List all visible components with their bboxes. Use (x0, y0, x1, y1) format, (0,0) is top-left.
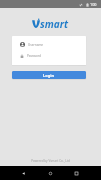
button[interactable]: Recent apps (69, 166, 83, 180)
button[interactable]: Login (12, 71, 86, 79)
button[interactable]: Password (12, 50, 86, 61)
staticText: smart (40, 17, 69, 29)
staticText: Login (43, 73, 55, 78)
button[interactable]: Home (43, 166, 57, 180)
staticText: 100 (90, 2, 97, 7)
staticText: Password (27, 54, 41, 58)
staticText: Powered by Vsmart Co., Ltd (31, 159, 70, 163)
staticText: Username (28, 43, 44, 47)
button[interactable]: Username (12, 39, 86, 50)
button[interactable]: Back (16, 166, 30, 180)
